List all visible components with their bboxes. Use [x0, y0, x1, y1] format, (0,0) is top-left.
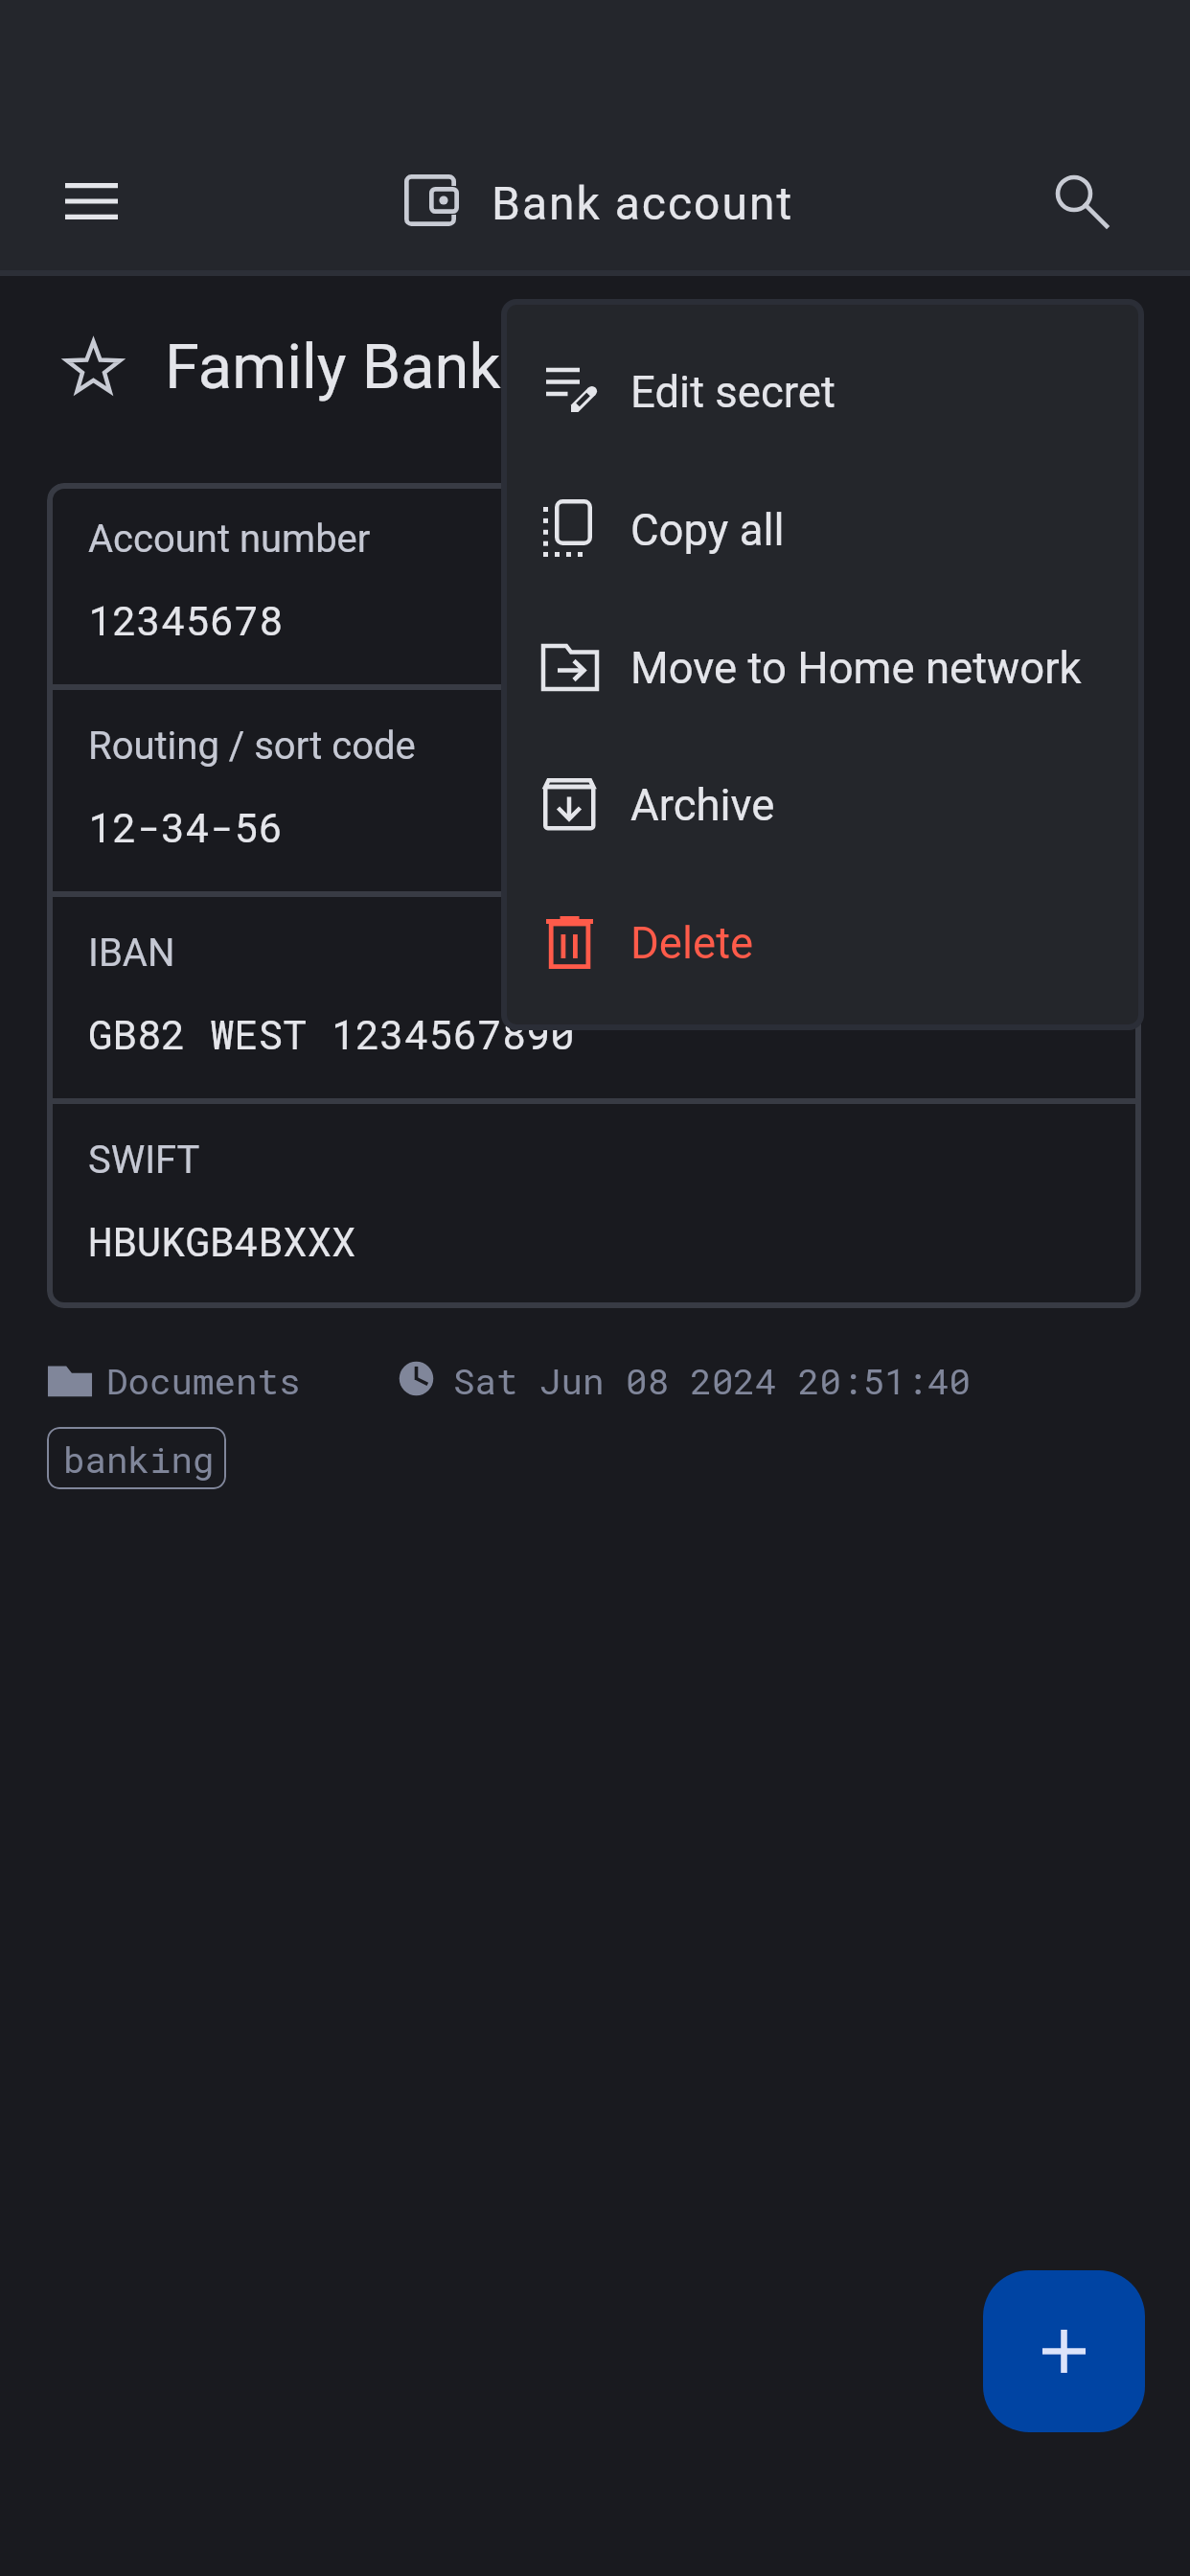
staticText: Account number: [88, 517, 371, 562]
staticText: Family Bank Account: [165, 331, 747, 403]
button[interactable]: Move to Home network: [507, 598, 1138, 735]
button[interactable]: banking: [47, 1427, 226, 1489]
button[interactable]: Delete: [507, 873, 1138, 1010]
button[interactable]: Search: [1022, 140, 1135, 263]
button[interactable]: Account number: [47, 483, 1141, 690]
staticText: 12345678: [88, 593, 284, 647]
staticText: SWIFT: [88, 1138, 200, 1183]
button[interactable]: IBAN: [47, 897, 1141, 1104]
button[interactable]: Open navigation drawer: [30, 140, 152, 263]
staticText: Documents: [106, 1357, 301, 1404]
staticText: 12-34-56: [88, 800, 284, 854]
button[interactable]: Add secret: [983, 2270, 1145, 2432]
staticText: HBUKGB4BXXX: [88, 1214, 356, 1268]
button[interactable]: Toggle favourite: [52, 325, 135, 408]
button[interactable]: Routing / sort code: [47, 690, 1141, 897]
button[interactable]: Copy all: [507, 460, 1138, 597]
button[interactable]: Edit secret: [507, 322, 1138, 459]
staticText: Bank account: [492, 176, 794, 230]
staticText: Edit secret: [630, 367, 835, 418]
staticText: GB82 WEST 1234567890: [88, 1007, 575, 1061]
staticText: Copy all: [630, 505, 785, 556]
staticText: banking: [63, 1436, 215, 1483]
staticText: Routing / sort code: [88, 724, 416, 769]
staticText: Archive: [630, 780, 775, 831]
button[interactable]: SWIFT: [47, 1104, 1141, 1308]
button[interactable]: Archive: [507, 735, 1138, 872]
staticText: Delete: [630, 918, 754, 969]
staticText: Move to Home network: [630, 643, 1082, 694]
staticText: IBAN: [88, 931, 175, 976]
staticText: Sat Jun 08 2024 20:51:40: [453, 1357, 972, 1404]
